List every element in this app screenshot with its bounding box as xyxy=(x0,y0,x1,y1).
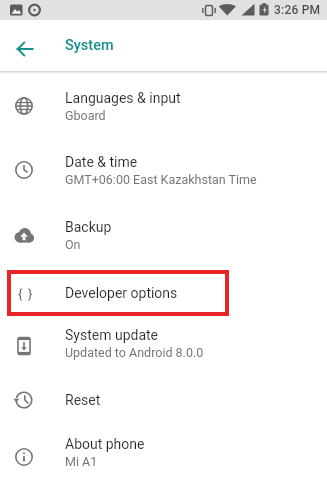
button[interactable]: Languages & input xyxy=(0,78,327,134)
staticText: Developer options xyxy=(65,285,178,301)
staticText: Reset xyxy=(65,392,101,408)
staticText: Languages & input xyxy=(65,90,181,106)
staticText: GMT+06:00 East Kazakhstan Time xyxy=(65,172,257,187)
staticText: Date & time xyxy=(65,154,138,170)
button[interactable]: Reset xyxy=(0,372,327,428)
staticText: System update xyxy=(65,327,159,343)
staticText: Updated to Android 8.0.0 xyxy=(65,345,204,360)
staticText: On xyxy=(65,237,81,252)
staticText: System xyxy=(65,37,114,54)
button[interactable] xyxy=(8,32,41,65)
staticText: About phone xyxy=(65,436,145,452)
button[interactable]: Backup xyxy=(0,207,327,263)
button[interactable]: About phone xyxy=(0,424,327,480)
button[interactable]: Date & time xyxy=(0,142,327,198)
button[interactable]: System update xyxy=(0,315,327,371)
button[interactable]: { } xyxy=(0,265,327,321)
staticText: Mi A1 xyxy=(65,454,98,469)
staticText: 3:26 PM xyxy=(274,3,321,17)
staticText: { } xyxy=(18,286,34,301)
staticText: Gboard xyxy=(65,108,106,123)
staticText: Backup xyxy=(65,219,112,235)
